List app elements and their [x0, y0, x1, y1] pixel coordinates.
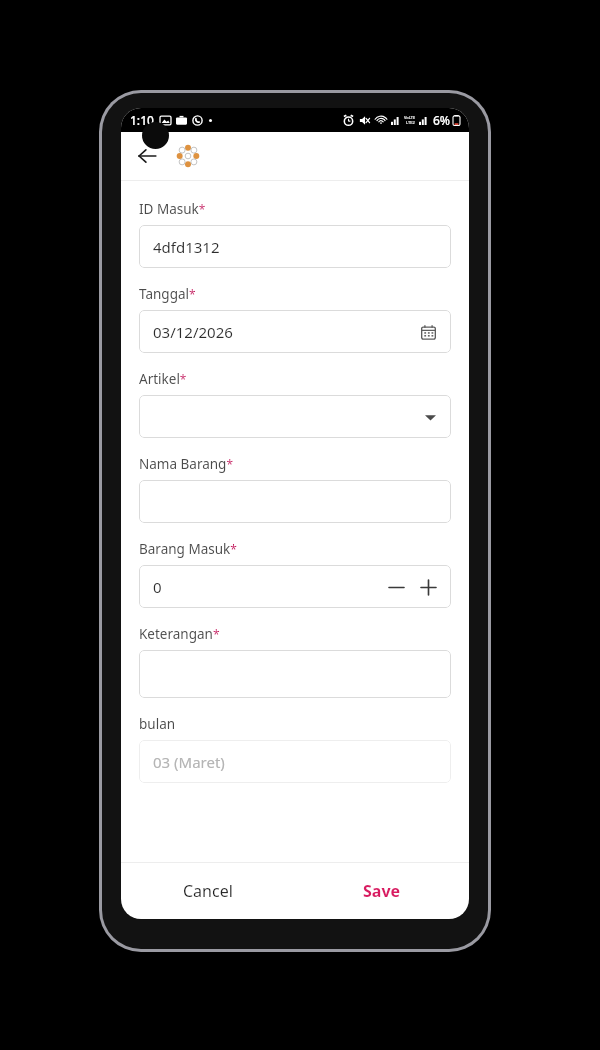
staticText: Barang Masuk*: [139, 540, 237, 558]
button[interactable]: 4dfd1312: [139, 225, 451, 268]
button[interactable]: Save: [295, 863, 469, 919]
button[interactable]: Back: [128, 137, 166, 175]
button[interactable]: App logo: [171, 139, 205, 173]
staticText: ID Masuk*: [139, 200, 206, 218]
staticText: Tanggal*: [139, 285, 196, 303]
button[interactable]: [139, 480, 451, 523]
staticText: VoLTE: [404, 115, 416, 120]
staticText: Keterangan*: [139, 625, 220, 643]
staticText: Save: [363, 880, 401, 902]
staticText: 6%: [433, 112, 451, 128]
staticText: 4dfd1312: [153, 237, 220, 257]
button[interactable]: Increase: [413, 572, 443, 602]
button[interactable]: Pick date: [416, 320, 440, 344]
staticText: Cancel: [183, 880, 233, 902]
staticText: 03 (Maret): [153, 752, 225, 772]
staticText: 03/12/2026: [153, 322, 416, 342]
staticText: Artikel*: [139, 370, 187, 388]
staticText: Nama Barang*: [139, 455, 234, 473]
staticText: bulan: [139, 715, 176, 733]
button[interactable]: [139, 650, 451, 698]
button[interactable]: Select Artikel: [139, 395, 451, 438]
button[interactable]: 03 (Maret): [139, 740, 451, 783]
button[interactable]: Decrease: [381, 572, 411, 602]
staticText: 0: [153, 577, 381, 597]
button[interactable]: 03/12/2026: [139, 310, 451, 353]
staticText: 1:10: [130, 112, 154, 128]
staticText: LTE2: [406, 120, 415, 125]
button[interactable]: Cancel: [121, 863, 295, 919]
